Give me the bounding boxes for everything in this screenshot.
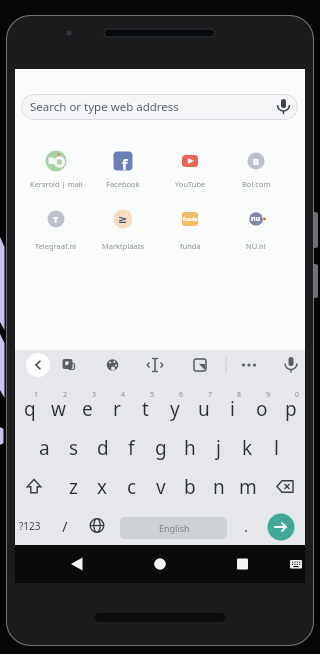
staticText: B [253,155,259,167]
staticText: NU.nl [246,241,266,251]
button[interactable] [188,353,212,377]
button[interactable] [157,193,223,245]
button[interactable] [223,193,289,245]
button[interactable] [143,353,167,377]
staticText: m [239,474,257,500]
button[interactable] [15,467,59,506]
button[interactable]: j [204,428,233,467]
button[interactable] [128,545,192,583]
staticText: i [230,396,235,422]
button[interactable] [279,353,303,377]
staticText: r [113,396,121,422]
staticText: Search or type web address [30,99,179,115]
button[interactable]: m [233,467,262,506]
button[interactable]: g [146,428,175,467]
staticText: x [97,474,108,500]
staticText: f [128,435,135,461]
staticText: n [213,474,225,500]
staticText: t [142,396,149,422]
button[interactable]: ?123 [15,506,45,545]
button[interactable]: . [231,506,261,545]
button[interactable] [262,467,306,506]
button[interactable]: r [102,389,131,428]
button[interactable]: y [160,389,189,428]
button[interactable]: u [189,389,218,428]
staticText: / [62,516,68,536]
button[interactable]: k [233,428,262,467]
button[interactable] [23,135,89,187]
button[interactable] [283,548,305,580]
staticText: funda [180,241,201,251]
staticText: Marktplaats [102,241,145,251]
staticText: 9 [266,390,271,400]
staticText: Facebook [106,179,140,189]
staticText: 6 [179,390,184,400]
button[interactable]: b [175,467,204,506]
staticText: Bol.com [242,179,271,189]
button[interactable]: n [204,467,233,506]
button[interactable] [267,513,295,541]
staticText: o [256,396,268,422]
staticText: 4 [121,390,126,400]
staticText: s [69,435,79,461]
staticText: English [159,522,190,534]
button[interactable]: q [15,389,44,428]
staticText: Telegraaf.nl [35,241,77,251]
button[interactable]: t [131,389,160,428]
button[interactable] [90,193,156,245]
button[interactable]: v [146,467,175,506]
staticText: g [155,435,167,461]
button[interactable]: Search or type web address [21,94,298,120]
staticText: 1 [34,390,39,400]
button[interactable]: c [117,467,146,506]
staticText: p [285,396,297,422]
staticText: k [242,435,253,461]
button[interactable]: h [175,428,204,467]
staticText: h [184,435,196,461]
staticText: ?123 [19,519,41,533]
button[interactable] [237,353,261,377]
staticText: nu [251,214,261,224]
button[interactable]: a [30,428,59,467]
staticText: 0 [295,390,300,400]
button[interactable]: x [88,467,117,506]
button[interactable] [223,135,289,187]
staticText: f [122,155,128,174]
staticText: 2 [63,390,68,400]
button[interactable]: / [50,506,80,545]
button[interactable] [120,517,227,539]
button[interactable] [26,353,50,377]
button[interactable] [101,353,125,377]
button[interactable]: l [262,428,291,467]
staticText: u [198,396,210,422]
staticText: z [69,474,78,500]
button[interactable]: e [73,389,102,428]
staticText: d [97,435,109,461]
button[interactable] [56,353,80,377]
staticText: T [53,213,59,225]
button[interactable]: p [276,389,305,428]
button[interactable] [157,135,223,187]
staticText: 5 [150,390,155,400]
button[interactable]: z [59,467,88,506]
button[interactable]: f [117,428,146,467]
staticText: 8 [237,390,242,400]
button[interactable] [211,545,273,583]
button[interactable] [90,135,156,187]
staticText: c [127,474,137,500]
staticText: Kersroid | mail [30,179,83,189]
button[interactable]: d [88,428,117,467]
staticText: e [82,396,93,422]
staticText: 3 [92,390,97,400]
button[interactable]: w [44,389,73,428]
staticText: funda [183,216,198,223]
button[interactable]: s [59,428,88,467]
button[interactable]: o [247,389,276,428]
staticText: YouTube [175,179,206,189]
button[interactable]: i [218,389,247,428]
button[interactable] [23,193,89,245]
staticText: l [274,435,279,461]
staticText: 7 [208,390,213,400]
button[interactable] [82,506,112,545]
button[interactable] [45,545,109,583]
